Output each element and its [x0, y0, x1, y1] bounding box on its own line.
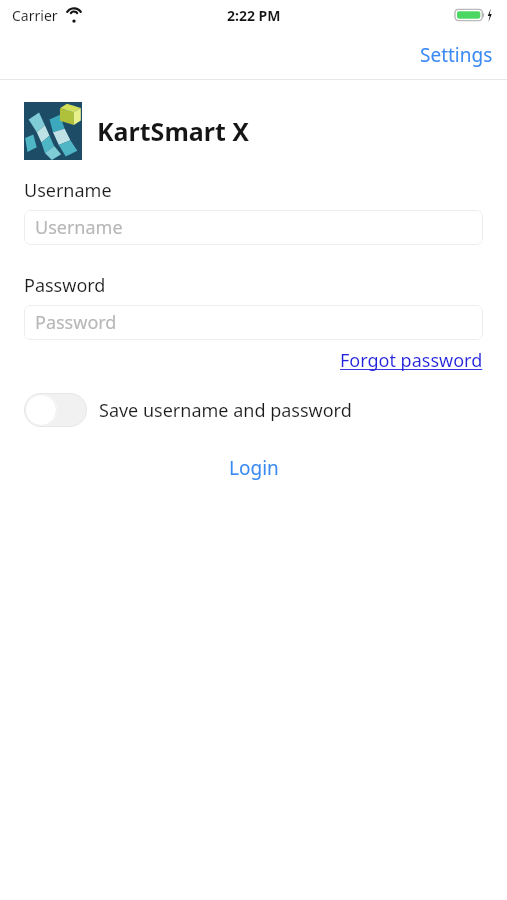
button[interactable]: Settings — [406, 36, 507, 74]
staticText: Username — [35, 215, 123, 240]
staticText: 2:22 PM — [227, 6, 281, 25]
button[interactable]: Username — [24, 210, 483, 245]
button[interactable]: Login — [211, 449, 297, 487]
button[interactable]: Save username and password toggle — [24, 393, 483, 427]
button[interactable]: Password — [24, 305, 483, 340]
other: Save username and password toggle — [24, 393, 87, 427]
staticText: Save username and password — [99, 398, 352, 423]
staticText: Carrier — [12, 6, 58, 25]
staticText: Settings — [420, 42, 493, 68]
staticText: Password — [35, 310, 117, 335]
button[interactable]: Forgot password — [340, 348, 483, 373]
staticText: Username — [24, 178, 112, 203]
staticText: Password — [24, 273, 106, 298]
staticText: Login — [229, 455, 279, 481]
staticText: KartSmart X — [97, 114, 250, 148]
staticText: Forgot password — [340, 348, 483, 373]
